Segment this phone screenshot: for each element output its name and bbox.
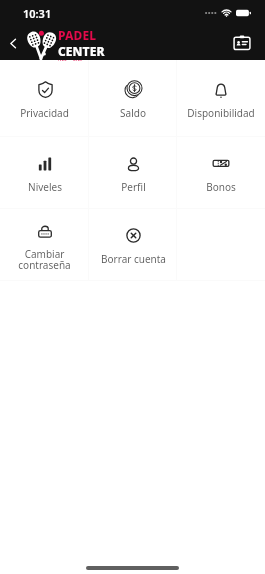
button[interactable]: Cambiar contraseña bbox=[0, 209, 89, 280]
staticText: Niveles bbox=[28, 180, 62, 194]
button[interactable]: Back bbox=[0, 30, 26, 56]
staticText: PADEL bbox=[58, 27, 97, 43]
staticText: Borrar cuenta bbox=[101, 252, 166, 266]
staticText: 10:31 bbox=[23, 6, 52, 21]
staticText: Bonos bbox=[206, 180, 236, 194]
button[interactable]: Perfil bbox=[89, 137, 177, 208]
staticText: LIMA · PERÚ bbox=[58, 60, 83, 61]
button[interactable]: Profile card bbox=[231, 32, 253, 54]
staticText: Saldo bbox=[120, 106, 146, 120]
button[interactable]: Borrar cuenta bbox=[89, 209, 177, 280]
staticText: Disponibilidad bbox=[187, 106, 255, 120]
button[interactable]: Saldo bbox=[89, 60, 177, 136]
staticText: Perfil bbox=[121, 180, 146, 194]
button[interactable]: Niveles bbox=[0, 137, 89, 208]
button[interactable]: Disponibilidad bbox=[177, 60, 265, 136]
staticText: CENTER bbox=[58, 43, 105, 59]
staticText: Privacidad bbox=[20, 106, 69, 120]
staticText: Cambiar contraseña bbox=[18, 247, 71, 272]
button[interactable]: Bonos bbox=[177, 137, 265, 208]
button[interactable]: Privacidad bbox=[0, 60, 89, 136]
